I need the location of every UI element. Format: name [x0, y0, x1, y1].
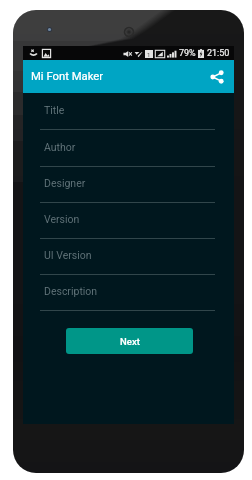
button[interactable]: Designer: [23, 167, 234, 203]
button[interactable]: UI Version: [23, 239, 234, 275]
staticText: 79%: [179, 48, 196, 59]
staticText: Mi Font Maker: [31, 70, 104, 83]
staticText: Title: [44, 104, 65, 116]
staticText: Next: [120, 336, 140, 347]
staticText: Designer: [44, 177, 86, 189]
button[interactable]: Author: [23, 130, 234, 167]
button[interactable]: Next: [66, 328, 193, 354]
button[interactable]: Description: [23, 275, 234, 311]
button[interactable]: Title: [23, 93, 234, 130]
button[interactable]: Share: [205, 65, 229, 89]
button[interactable]: Version: [23, 203, 234, 239]
staticText: Author: [44, 141, 76, 153]
staticText: Description: [44, 285, 98, 297]
staticText: 21:50: [207, 48, 230, 59]
staticText: 1: [147, 51, 151, 58]
staticText: UI Version: [44, 249, 92, 261]
staticText: Version: [44, 213, 80, 225]
